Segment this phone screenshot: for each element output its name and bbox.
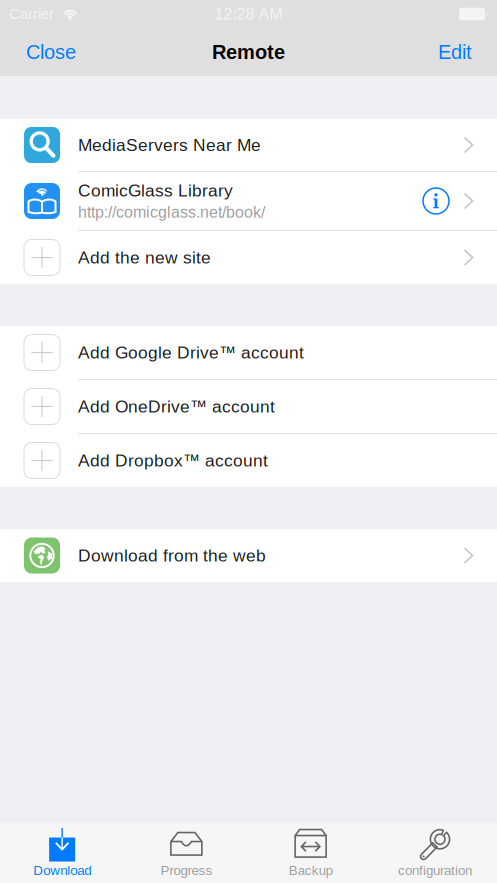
staticText: 12:28 AM [214,5,282,23]
staticText: Progress [160,863,212,878]
button[interactable]: ComicGlass Library [0,172,497,230]
button[interactable]: Add the new site [0,231,497,284]
staticText: Edit [438,41,472,63]
staticText: Download from the web [78,546,266,565]
staticText: Add the new site [78,248,211,267]
staticText: ComicGlass Library [78,181,233,200]
button[interactable]: Add Google Drive™ account [0,326,497,379]
button[interactable]: Add OneDrive™ account [0,380,497,433]
staticText: http://comicglass.net/book/ [78,203,265,221]
button[interactable]: Download from the web [0,529,497,582]
button[interactable]: Add Dropbox™ account [0,434,497,487]
button[interactable]: configuration [373,823,497,883]
staticText: Add Dropbox™ account [78,451,268,470]
staticText: Add Google Drive™ account [78,343,304,362]
button[interactable]: Progress [124,823,248,883]
staticText: Carrier [9,6,54,22]
staticText: Remote [212,41,285,63]
staticText: Backup [289,863,333,878]
staticText: MediaServers Near Me [78,135,261,155]
button[interactable]: Close [0,28,102,76]
button[interactable]: MediaServers Near Me [0,119,497,171]
staticText: configuration [398,863,472,878]
button[interactable]: Download [0,823,124,883]
button[interactable]: Backup [248,823,373,883]
staticText: Add OneDrive™ account [78,397,275,416]
button[interactable]: Edit [413,28,497,76]
staticText: Download [33,863,91,878]
staticText: Close [26,41,76,63]
